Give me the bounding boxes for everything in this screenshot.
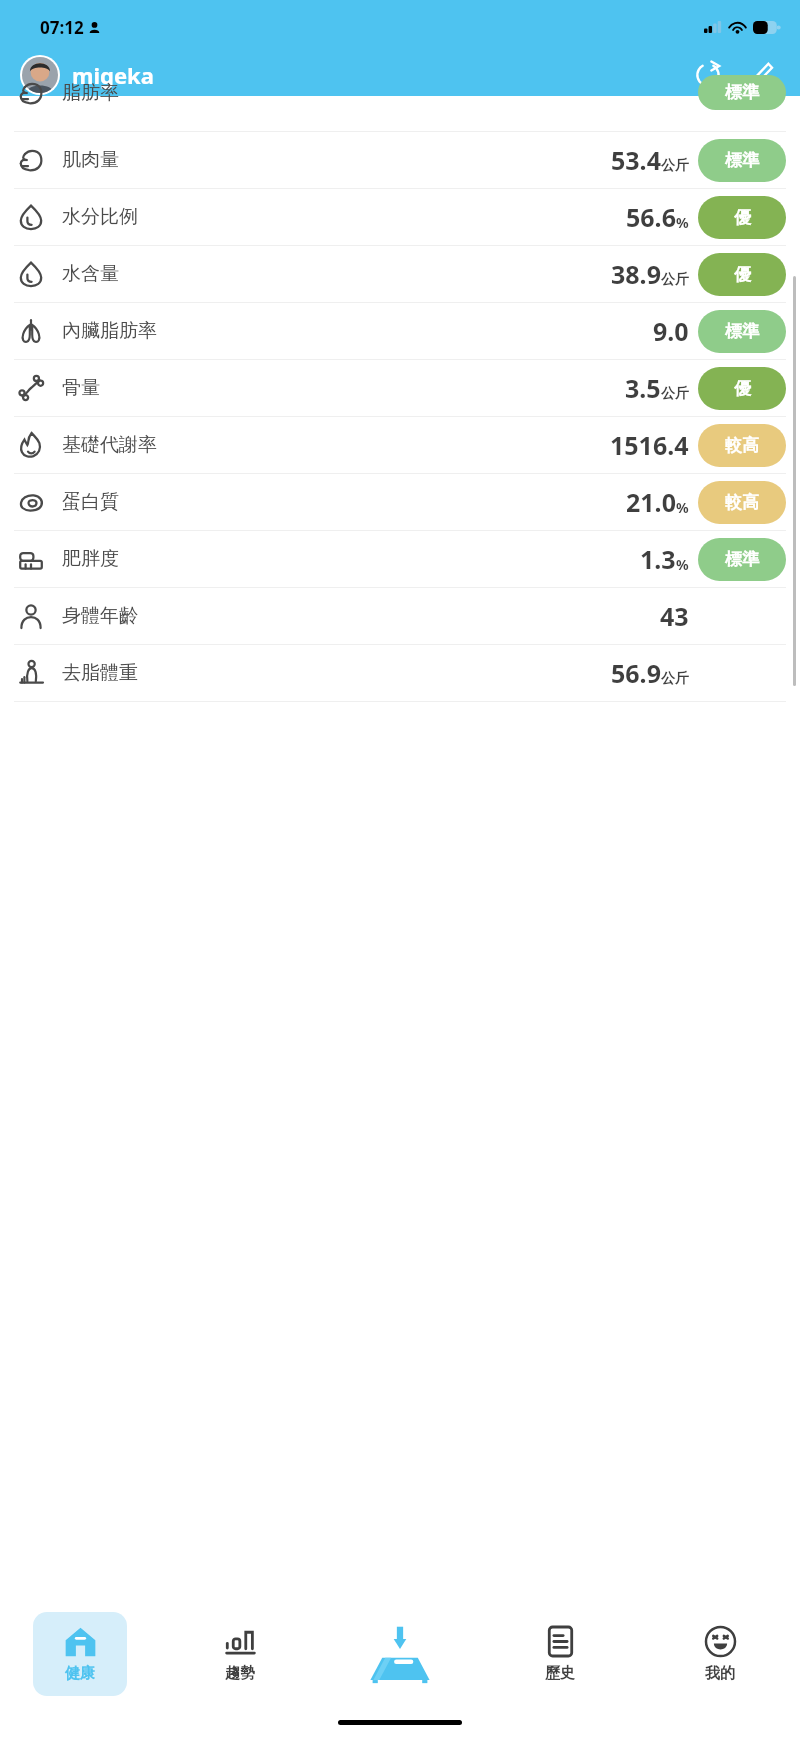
- button[interactable]: 肌肉量: [0, 132, 800, 188]
- staticText: 56.9: [611, 656, 661, 690]
- staticText: 公斤: [661, 157, 689, 175]
- staticText: 標準: [725, 321, 759, 342]
- staticText: 健康: [65, 1664, 95, 1683]
- staticText: 公斤: [661, 385, 689, 403]
- staticText: 3.5: [625, 371, 661, 405]
- staticText: 標準: [725, 150, 759, 171]
- staticText: 去脂體重: [62, 661, 138, 685]
- button[interactable]: migeka: [20, 55, 154, 95]
- staticText: 1516.4: [610, 428, 689, 462]
- staticText: 07:12: [40, 16, 84, 39]
- staticText: 較高: [725, 435, 759, 456]
- staticText: %: [676, 213, 689, 232]
- staticText: %: [676, 498, 689, 517]
- staticText: 肌肉量: [62, 148, 119, 172]
- button[interactable]: 蛋白質: [0, 474, 800, 530]
- staticText: 優: [734, 264, 751, 285]
- staticText: 38.9: [611, 257, 661, 291]
- button[interactable]: 身體年齡: [0, 588, 800, 644]
- staticText: 脂肪率: [62, 81, 119, 105]
- button[interactable]: 歷史: [513, 1612, 607, 1696]
- staticText: 公斤: [661, 271, 689, 289]
- button[interactable]: 肥胖度: [0, 531, 800, 587]
- staticText: %: [676, 555, 689, 574]
- staticText: 內臟脂肪率: [62, 319, 157, 343]
- staticText: 我的: [705, 1664, 735, 1683]
- staticText: 優: [734, 207, 751, 228]
- button[interactable]: Edit: [740, 55, 780, 95]
- staticText: 基礎代謝率: [62, 433, 157, 457]
- button[interactable]: 去脂體重: [0, 645, 800, 701]
- button[interactable]: 健康: [33, 1612, 127, 1696]
- button[interactable]: 水分比例: [0, 189, 800, 245]
- button[interactable]: 我的: [673, 1612, 767, 1696]
- staticText: 水含量: [62, 262, 119, 286]
- staticText: 歷史: [545, 1664, 575, 1683]
- staticText: 較高: [725, 492, 759, 513]
- staticText: 肥胖度: [62, 547, 119, 571]
- staticText: 趨勢: [225, 1664, 255, 1683]
- staticText: 骨量: [62, 376, 100, 400]
- staticText: 水分比例: [62, 205, 138, 229]
- staticText: 標準: [725, 549, 759, 570]
- button[interactable]: 水含量: [0, 246, 800, 302]
- staticText: 21.0: [626, 485, 676, 519]
- staticText: 53.4: [611, 143, 661, 177]
- button[interactable]: Measure: [320, 1602, 480, 1706]
- staticText: 9.0: [653, 314, 689, 348]
- staticText: migeka: [72, 60, 154, 90]
- staticText: 43: [660, 599, 689, 633]
- staticText: 56.6: [626, 200, 676, 234]
- button[interactable]: Refresh: [688, 55, 728, 95]
- staticText: 公斤: [661, 670, 689, 688]
- staticText: 優: [734, 378, 751, 399]
- staticText: 蛋白質: [62, 490, 119, 514]
- button[interactable]: 基礎代謝率: [0, 417, 800, 473]
- staticText: 1.3: [640, 542, 676, 576]
- button[interactable]: 骨量: [0, 360, 800, 416]
- staticText: 標準: [725, 82, 759, 103]
- staticText: 身體年齡: [62, 604, 138, 628]
- button[interactable]: 內臟脂肪率: [0, 303, 800, 359]
- button[interactable]: 趨勢: [193, 1612, 287, 1696]
